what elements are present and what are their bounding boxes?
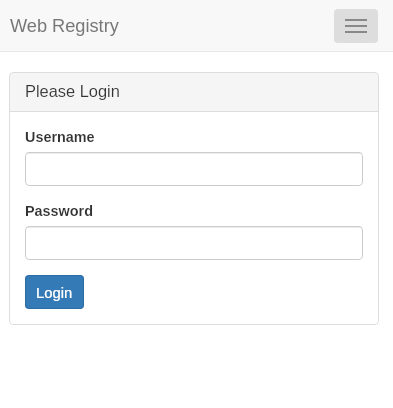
- button[interactable]: Web Registry: [0, 2, 129, 48]
- staticText: Password: [25, 200, 93, 220]
- button[interactable]: Toggle navigation: [334, 9, 378, 43]
- staticText: Please Login: [25, 83, 120, 101]
- button[interactable]: Password input: [25, 226, 363, 260]
- staticText: Web Registry: [10, 14, 119, 36]
- button[interactable]: Username input: [25, 152, 363, 186]
- button[interactable]: Login: [25, 275, 84, 309]
- staticText: Login: [36, 282, 73, 302]
- staticText: Username: [25, 126, 95, 146]
